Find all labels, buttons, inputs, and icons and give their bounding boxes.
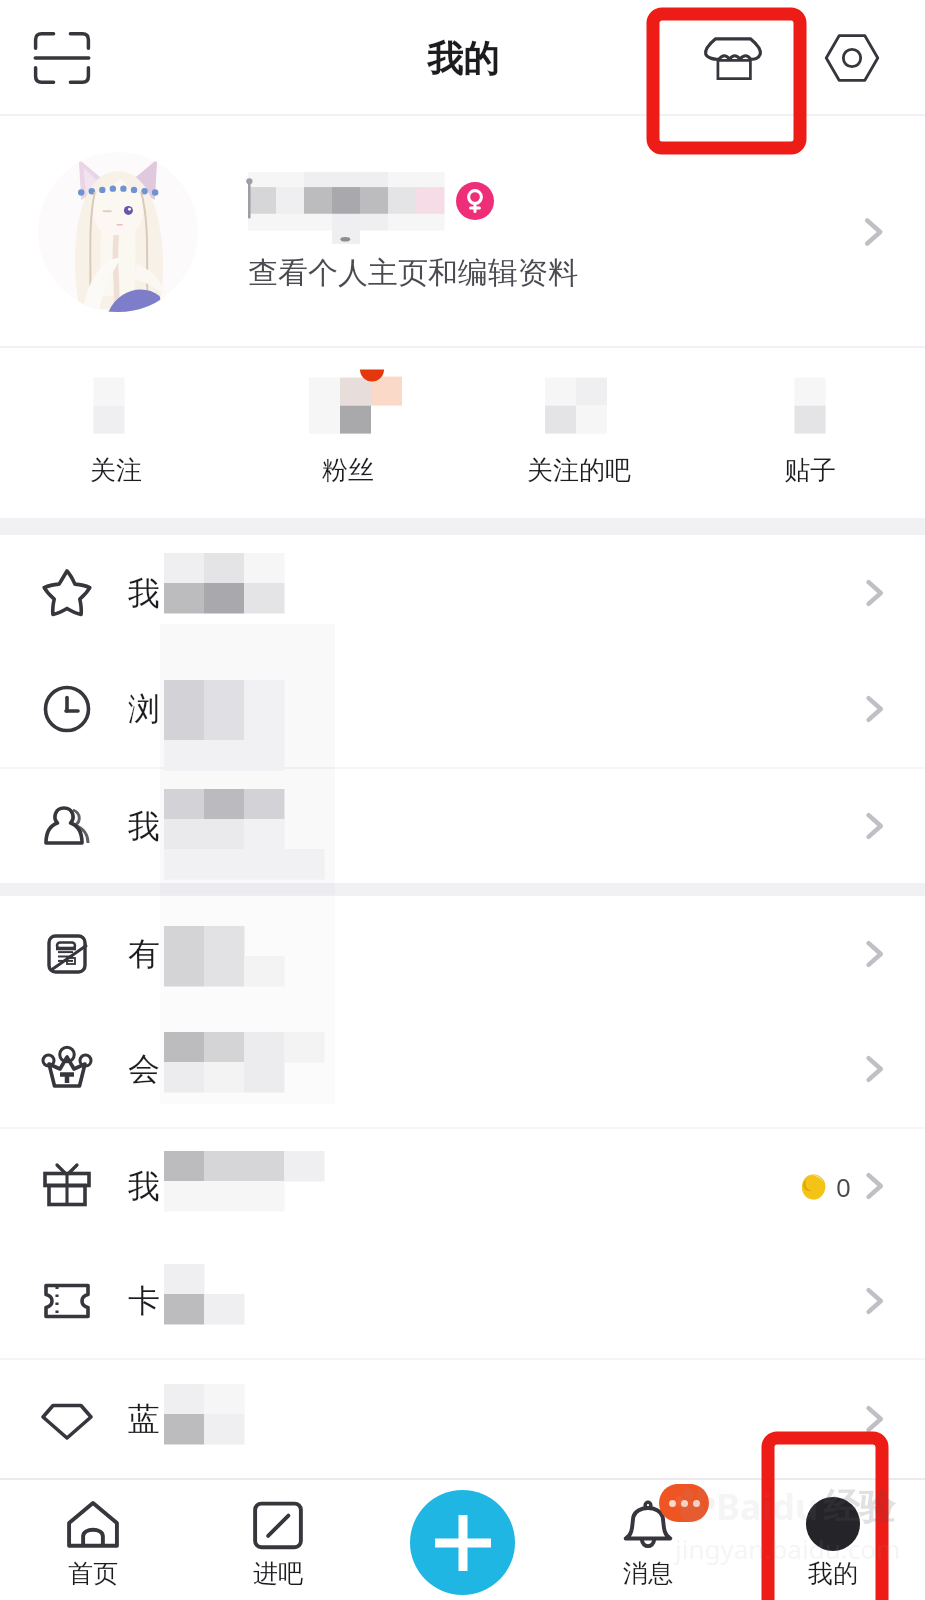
staticText: 关注的吧 <box>527 454 631 487</box>
staticText: 我 <box>128 573 160 613</box>
button[interactable]: 我 <box>0 769 925 883</box>
button[interactable]: 有 <box>0 896 925 1011</box>
button[interactable]: 首页 <box>0 1478 185 1600</box>
staticText: 粉丝 <box>322 454 374 487</box>
staticText: 我 <box>128 806 160 846</box>
button[interactable]: 我 <box>0 535 925 650</box>
staticText: 经验 <box>823 1484 895 1529</box>
staticText: 浏 <box>128 689 160 729</box>
staticText: 蓝 <box>128 1399 160 1439</box>
staticText: 有 <box>128 934 160 974</box>
button[interactable]: 蓝 <box>0 1360 925 1478</box>
button[interactable]: 我 <box>0 1129 925 1243</box>
staticText: Baidu <box>716 1482 819 1531</box>
button[interactable]: 浏 <box>0 650 925 767</box>
staticText: 我 <box>128 1166 160 1206</box>
staticText: 首页 <box>68 1558 118 1589</box>
button[interactable]: 查看个人主页和编辑资料 <box>0 116 925 348</box>
staticText: 会 <box>128 1049 160 1089</box>
button[interactable]: Scan QR code <box>26 22 98 94</box>
button[interactable]: 进吧 <box>185 1478 370 1600</box>
button[interactable]: 卡 <box>0 1243 925 1358</box>
staticText: jingyan.baidu.com <box>675 1531 901 1566</box>
button[interactable]: 粉丝 <box>232 348 463 518</box>
staticText: 查看个人主页和编辑资料 <box>248 254 578 292</box>
button[interactable]: Settings <box>810 16 894 100</box>
staticText: 0 <box>836 1169 851 1204</box>
staticText: 进吧 <box>253 1558 303 1589</box>
staticText: 关注 <box>90 454 142 487</box>
staticText: 我的 <box>808 1558 858 1589</box>
button[interactable]: 关注的吧 <box>463 348 694 518</box>
staticText: 贴子 <box>784 454 836 487</box>
button[interactable]: Shop <box>689 14 777 102</box>
staticText: 卡 <box>128 1281 160 1321</box>
button[interactable]: 关注 <box>0 348 232 518</box>
staticText: 消息 <box>623 1558 673 1589</box>
button[interactable]: Create post <box>410 1490 515 1595</box>
button[interactable]: 消息 <box>555 1478 740 1600</box>
staticText: 我的 <box>427 36 499 81</box>
button[interactable]: 贴子 <box>694 348 925 518</box>
button[interactable]: 会 <box>0 1011 925 1127</box>
button[interactable]: 我的 <box>740 1478 925 1600</box>
